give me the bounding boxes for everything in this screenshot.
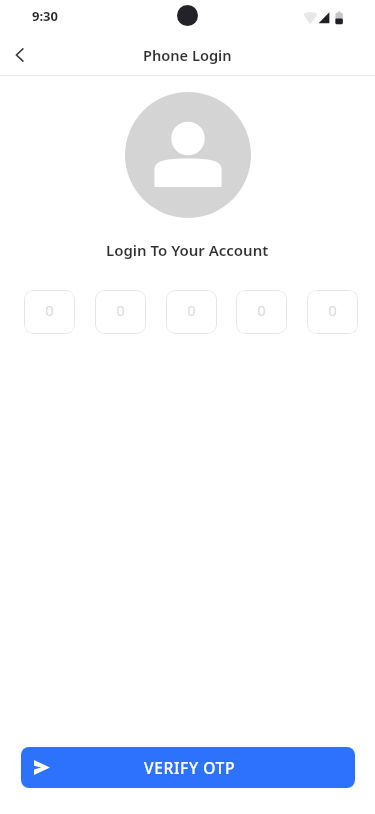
button[interactable]: OTP digit 5	[307, 290, 358, 334]
staticText: 0	[328, 300, 337, 320]
staticText: Phone Login	[143, 45, 232, 65]
button[interactable]: OTP digit 3	[166, 290, 217, 334]
button[interactable]: OTP digit 2	[95, 290, 146, 334]
staticText: 0	[257, 300, 266, 320]
staticText: Login To Your Account	[106, 240, 269, 260]
button[interactable]: Back	[0, 36, 40, 73]
staticText: VERIFY OTP	[144, 757, 236, 778]
button[interactable]: OTP digit 4	[236, 290, 287, 334]
staticText: 0	[187, 300, 196, 320]
button[interactable]: VERIFY OTP	[21, 747, 355, 788]
button[interactable]: OTP digit 1	[24, 290, 75, 334]
staticText: 9:30	[32, 7, 58, 25]
staticText: 0	[45, 300, 54, 320]
staticText: 0	[116, 300, 125, 320]
